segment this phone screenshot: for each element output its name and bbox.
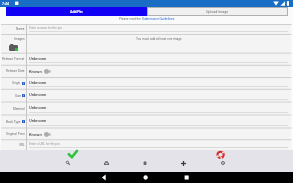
button[interactable]: Known xyxy=(29,128,291,140)
button[interactable]: Unknown xyxy=(29,77,288,89)
button[interactable]: Submission Guidelines xyxy=(142,17,175,21)
staticText: Images xyxy=(14,37,25,41)
button[interactable]: Enter a name for the pin xyxy=(29,24,288,34)
staticText: Original Price xyxy=(6,132,25,136)
staticText: Back Type xyxy=(6,120,21,124)
staticText: Enter a name for the pin xyxy=(29,26,62,30)
button[interactable]: Known xyxy=(29,65,291,77)
button[interactable]: Messages xyxy=(87,150,125,172)
staticText: Release Format xyxy=(2,57,25,61)
button[interactable]: Unknown xyxy=(29,102,288,115)
button[interactable]: Enter a URL for the pin xyxy=(29,139,288,150)
staticText: URL xyxy=(19,143,25,147)
staticText: Unknown xyxy=(29,118,47,123)
button[interactable]: Add Pin xyxy=(6,7,147,16)
button[interactable]: Add image xyxy=(9,44,18,51)
staticText: Add Pin xyxy=(70,10,83,14)
staticText: Unknown xyxy=(29,56,47,61)
button[interactable]: Unknown xyxy=(29,53,288,65)
staticText: Unknown xyxy=(29,92,47,97)
staticText: Release Date xyxy=(6,69,25,73)
staticText: You must add at least one image xyxy=(136,37,182,41)
staticText: 7:44 xyxy=(2,2,9,6)
staticText: Origin xyxy=(12,81,21,85)
button[interactable]: Upload Image xyxy=(147,7,288,16)
staticText: Unknown xyxy=(29,80,47,85)
staticText: Upload Image xyxy=(206,10,229,14)
button[interactable]: Unknown xyxy=(29,115,288,128)
staticText: Unknown xyxy=(29,105,47,110)
staticText: Enter a URL for the pin xyxy=(29,142,60,146)
button[interactable]: Search xyxy=(49,150,87,172)
staticText: Material xyxy=(13,107,25,111)
button[interactable]: Home xyxy=(125,150,164,172)
staticText: Known xyxy=(29,69,42,74)
button[interactable]: Unknown xyxy=(29,89,288,102)
staticText: Name xyxy=(16,27,25,31)
staticText: Known xyxy=(29,132,42,137)
staticText: Please read the xyxy=(119,17,142,21)
staticText: Size xyxy=(15,94,21,98)
button[interactable]: Add xyxy=(164,150,203,172)
button[interactable]: Settings xyxy=(203,150,242,172)
